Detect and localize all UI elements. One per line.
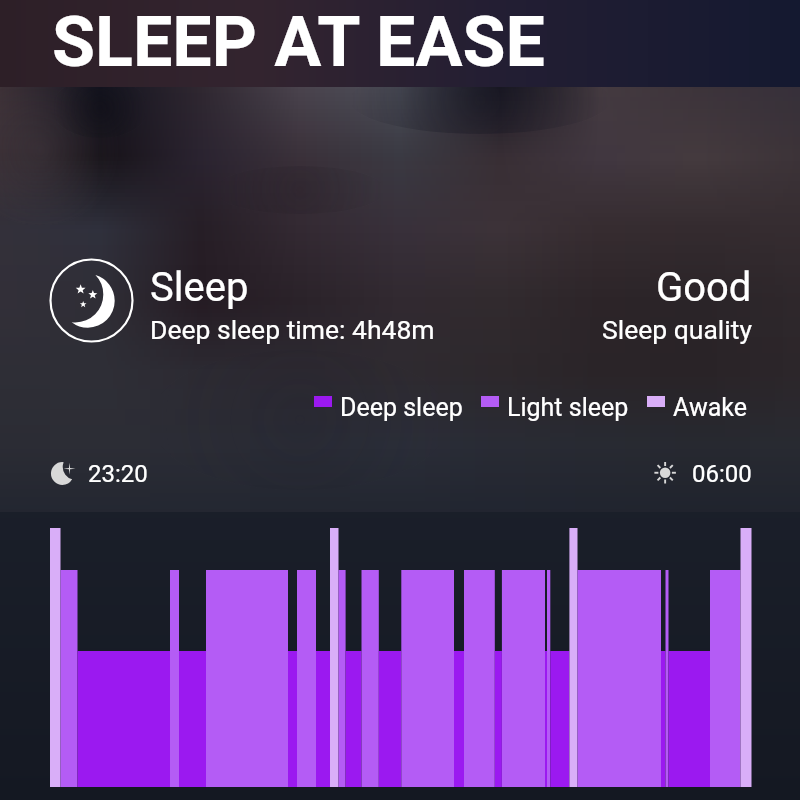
button[interactable]: Wake time xyxy=(0,459,752,487)
staticText: Deep sleep time: 4h48m xyxy=(150,314,435,345)
button[interactable]: Deep sleep xyxy=(314,386,463,415)
staticText: Sleep xyxy=(150,264,249,311)
staticText: Deep sleep xyxy=(340,393,463,422)
staticText: 06:00 xyxy=(692,460,752,488)
staticText: SLEEP AT EASE xyxy=(52,1,545,83)
staticText: Awake xyxy=(673,393,747,422)
button[interactable]: Light sleep xyxy=(481,386,629,415)
staticText: Good xyxy=(656,264,752,311)
button[interactable]: Awake xyxy=(647,386,747,415)
button[interactable]: Bedtime xyxy=(50,459,148,487)
other: Wake time xyxy=(651,459,679,487)
button[interactable]: Good xyxy=(0,264,752,345)
other: Bedtime xyxy=(50,459,78,487)
staticText: 23:20 xyxy=(88,460,148,488)
staticText: Light sleep xyxy=(507,393,629,422)
button[interactable]: Sleep xyxy=(150,264,435,345)
button[interactable]: SLEEP AT EASE xyxy=(0,0,800,87)
button[interactable] xyxy=(0,0,800,800)
staticText: Sleep quality xyxy=(602,314,752,345)
button[interactable]: Sleep summary xyxy=(50,259,133,342)
